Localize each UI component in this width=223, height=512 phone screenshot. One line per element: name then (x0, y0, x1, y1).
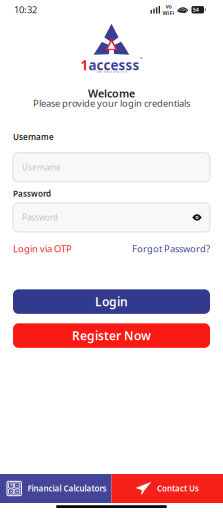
staticText: Financial Calculators (27, 483, 106, 494)
staticText: Login via OTP (13, 242, 72, 255)
staticText: WiFi (162, 9, 174, 16)
staticText: Password (22, 212, 58, 223)
staticText: Forgot Password? (132, 242, 210, 255)
staticText: 10:32 (14, 4, 37, 16)
staticText: × (10, 488, 13, 495)
staticText: − (16, 482, 19, 489)
staticText: Welcome (88, 86, 135, 100)
staticText: Please provide your login credentials (33, 97, 190, 109)
staticText: accesss (88, 56, 139, 74)
staticText: Trade Access Simplified (96, 70, 127, 74)
staticText: Username (22, 162, 61, 173)
staticText: ™ (139, 56, 142, 61)
staticText: Username (13, 132, 54, 142)
button[interactable]: Contact Us (111, 474, 223, 503)
button[interactable]: Login via OTP (13, 242, 72, 255)
staticText: + (10, 482, 13, 489)
button[interactable]: + (0, 474, 111, 503)
button[interactable]: Register Now (13, 323, 210, 348)
staticText: Register Now (72, 328, 151, 343)
staticText: 1 (80, 56, 88, 74)
staticText: = (16, 488, 19, 495)
staticText: Contact Us (157, 483, 199, 494)
staticText: Login (95, 294, 128, 309)
button[interactable]: Login (13, 289, 210, 314)
staticText: Password (13, 188, 51, 199)
button[interactable]: Forgot Password? (132, 242, 210, 255)
staticText: Vo (165, 3, 171, 10)
staticText: 54 (193, 6, 199, 13)
